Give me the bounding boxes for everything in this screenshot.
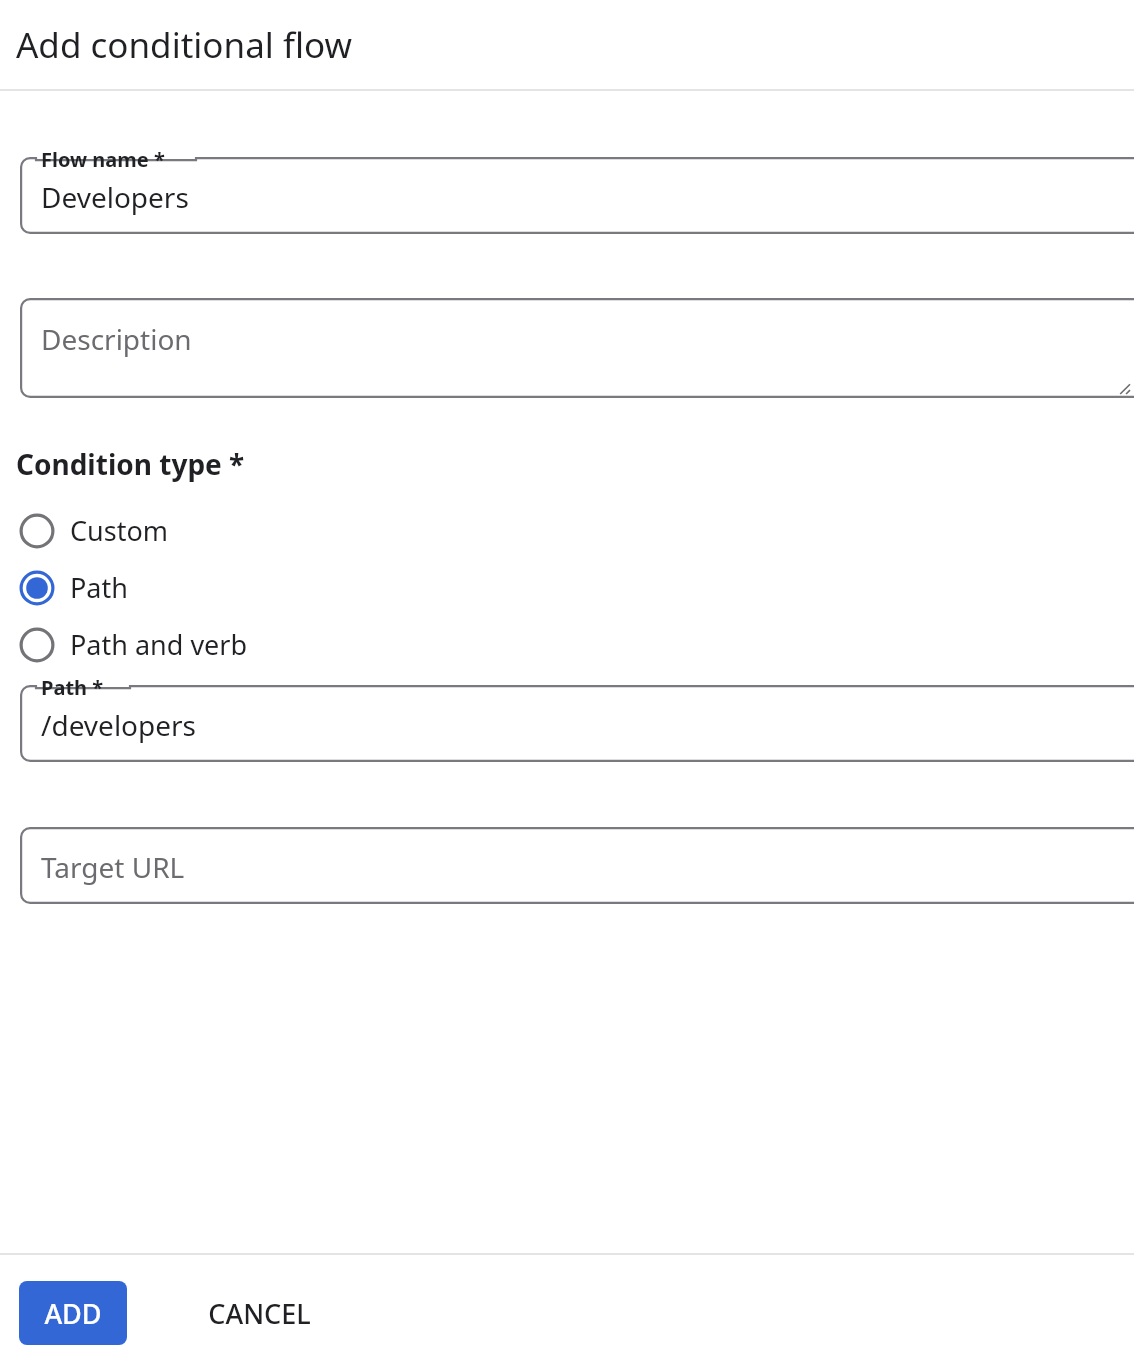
button[interactable]: Path <box>0 559 1114 616</box>
staticText: Description <box>41 320 192 358</box>
staticText: Target URL <box>41 848 185 886</box>
staticText: ADD <box>44 1295 102 1332</box>
button[interactable]: Custom <box>0 502 1114 559</box>
button[interactable]: Description <box>20 298 1134 398</box>
button[interactable]: Path and verb <box>0 616 1114 673</box>
staticText: Add conditional flow <box>16 21 352 69</box>
staticText: Custom <box>70 512 169 549</box>
staticText: /developers <box>41 706 197 744</box>
staticText: Path * <box>41 674 104 701</box>
button[interactable]: Target URL <box>20 827 1134 904</box>
staticText: Path <box>70 569 128 606</box>
button[interactable]: ADD <box>19 1281 127 1345</box>
button[interactable]: CANCEL <box>179 1281 339 1345</box>
staticText: Flow name * <box>41 146 165 173</box>
staticText: Condition type * <box>16 445 245 483</box>
staticText: Developers <box>41 178 189 216</box>
button[interactable]: Flow name * <box>20 157 1134 234</box>
button[interactable]: Path * <box>20 685 1134 762</box>
staticText: Path and verb <box>70 626 248 663</box>
staticText: CANCEL <box>208 1295 311 1332</box>
